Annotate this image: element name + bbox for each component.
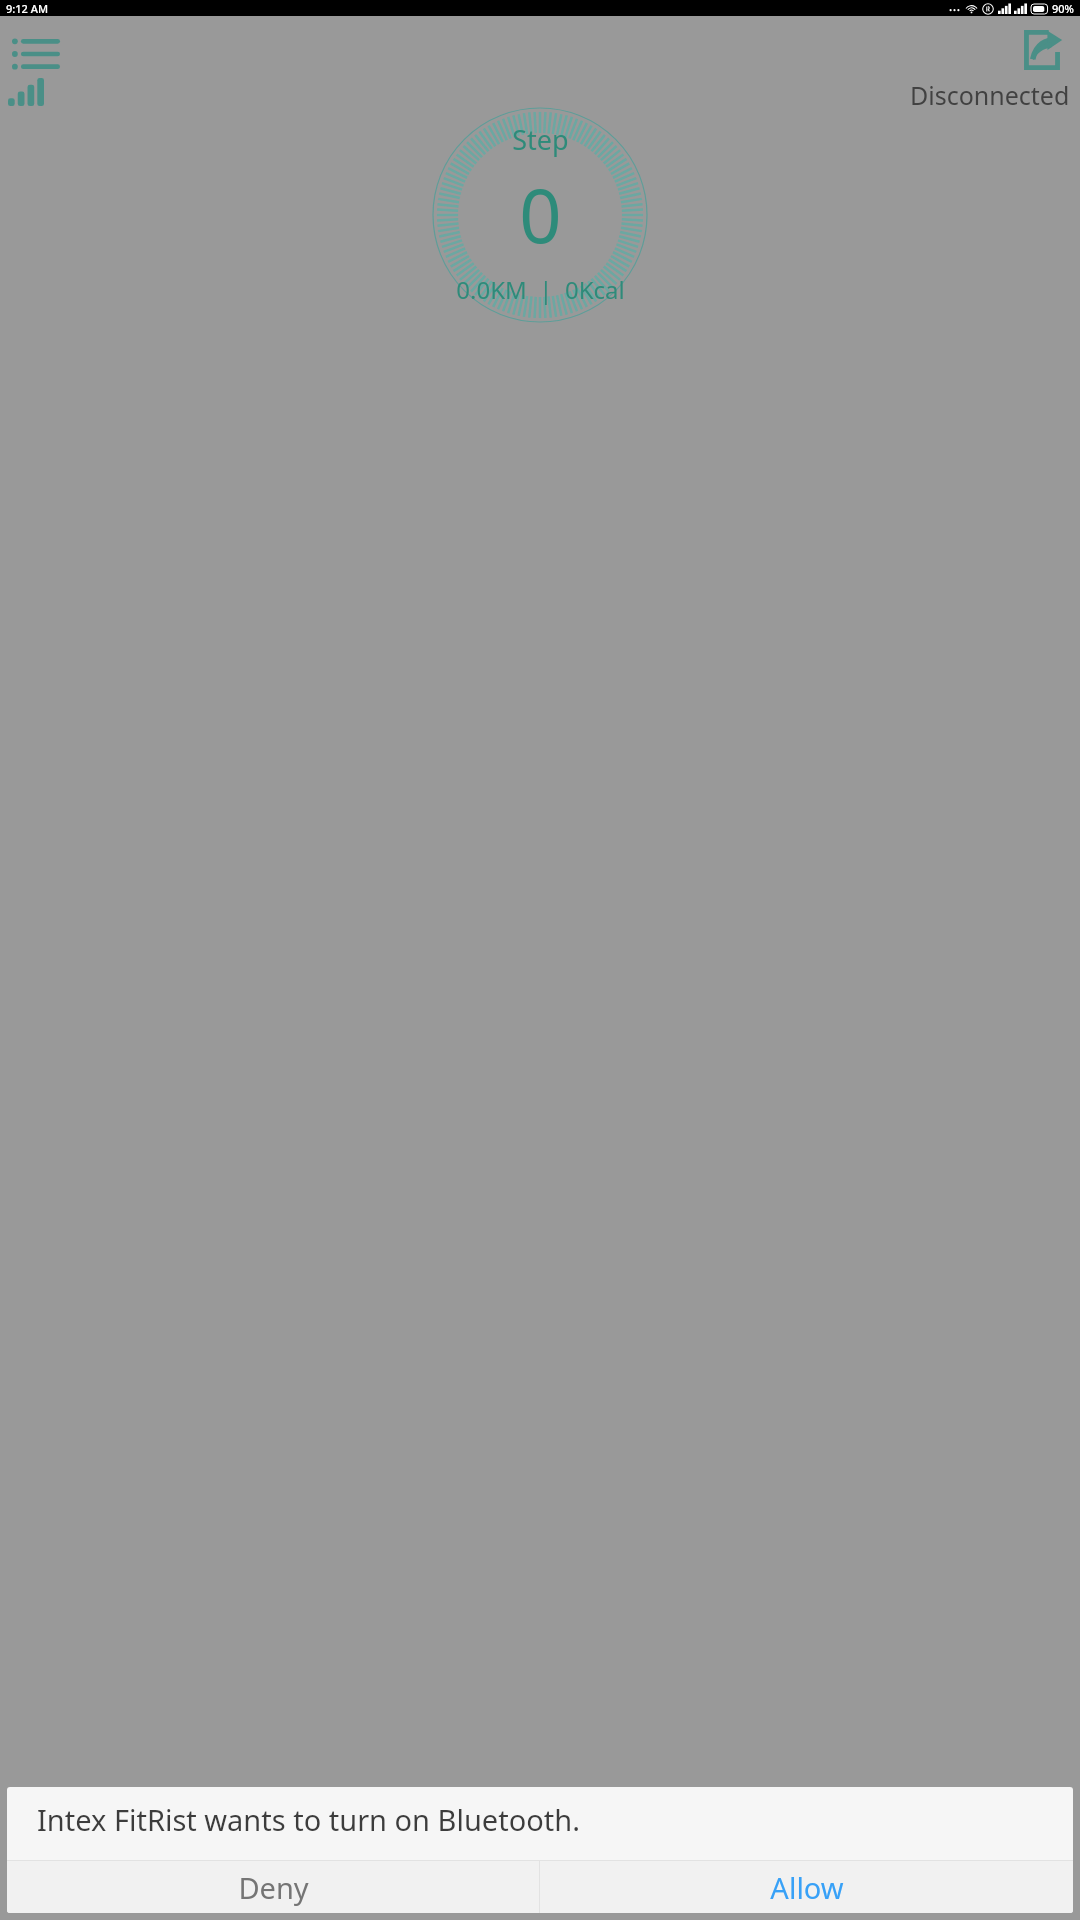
button[interactable]: Deny bbox=[7, 1861, 539, 1913]
button[interactable]: Step counter bbox=[432, 107, 648, 323]
staticText: 9:12 AM bbox=[6, 1, 49, 16]
button[interactable]: Disconnected bbox=[904, 74, 1076, 116]
staticText: 0.0KM | 0Kcal bbox=[456, 273, 625, 306]
button[interactable]: Share bbox=[1014, 22, 1070, 78]
staticText: Intex FitRist wants to turn on Bluetooth… bbox=[37, 1800, 580, 1839]
button[interactable]: Signal strength bbox=[4, 70, 48, 114]
staticText: Deny bbox=[238, 1868, 309, 1907]
staticText: 90% bbox=[1052, 1, 1074, 16]
staticText: 0 bbox=[519, 164, 562, 265]
button[interactable]: Menu bbox=[8, 26, 64, 82]
button[interactable]: Allow bbox=[540, 1861, 1073, 1913]
staticText: Step bbox=[512, 121, 569, 158]
staticText: Disconnected bbox=[910, 78, 1070, 112]
staticText: Allow bbox=[770, 1868, 844, 1907]
